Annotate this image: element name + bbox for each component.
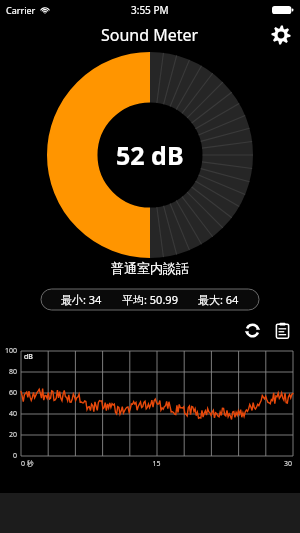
button[interactable]: [0, 346, 300, 476]
staticText: Sound Meter: [101, 24, 199, 46]
staticText: 最小: 34: [61, 292, 102, 307]
staticText: 普通室内談話: [111, 260, 189, 276]
button[interactable]: Settings: [268, 22, 294, 48]
staticText: 3:55 PM: [131, 3, 169, 17]
staticText: 平均: 50.99: [122, 292, 178, 307]
staticText: 52 dB: [116, 138, 184, 172]
button[interactable]: History: [270, 318, 294, 342]
button[interactable]: 最小: 34: [41, 289, 259, 310]
staticText: 最大: 64: [198, 292, 239, 307]
staticText: Carrier: [6, 4, 36, 16]
button[interactable]: Reset: [240, 318, 264, 342]
